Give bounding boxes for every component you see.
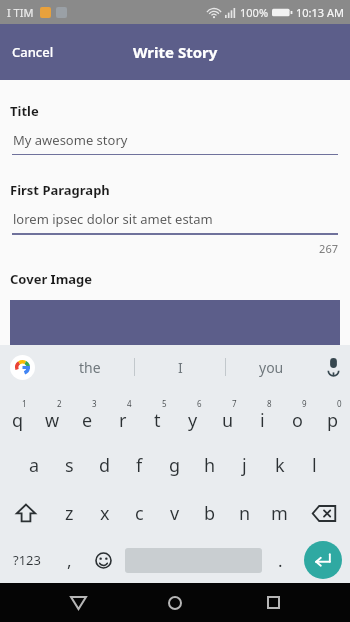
staticText: i [260,408,265,433]
staticText: 8 [267,398,272,409]
staticText: 100% [240,5,269,20]
staticText: First Paragraph [10,181,110,199]
button[interactable]: Shift [0,489,52,537]
staticText: e [82,408,93,433]
staticText: Cancel [12,43,54,61]
staticText: 5 [162,398,167,409]
button[interactable]: Voice input [316,345,350,389]
staticText: r [119,408,127,433]
button[interactable]: 9 [280,393,315,441]
staticText: w [45,408,60,433]
staticText: x [100,501,110,526]
staticText: q [12,408,24,433]
staticText: b [204,501,216,526]
staticText: ?123 [13,551,41,569]
staticText: 9 [302,398,307,409]
button[interactable]: z [52,489,87,537]
staticText: the [79,358,101,377]
staticText: a [29,453,40,478]
button[interactable]: m [262,489,297,537]
button[interactable]: I [135,345,225,389]
staticText: 0 [337,398,342,409]
button[interactable]: Home [155,583,195,622]
button[interactable]: the [45,345,134,389]
button[interactable]: My awesome story [0,131,350,155]
staticText: m [271,501,288,526]
staticText: c [135,501,144,526]
button[interactable]: Google [10,355,35,380]
staticText: Title [10,102,39,120]
staticText: My awesome story [13,131,128,149]
staticText: d [99,453,111,478]
staticText: 3 [92,398,97,409]
button[interactable]: h [192,441,227,489]
button[interactable]: Enter [296,537,350,583]
staticText: h [204,453,216,478]
button[interactable]: c [122,489,157,537]
button[interactable]: a [17,441,52,489]
staticText: I [178,358,183,377]
button[interactable]: 5 [140,393,175,441]
staticText: s [65,453,74,478]
button[interactable]: ?123 [0,537,54,583]
button[interactable]: Backspace [297,489,350,537]
staticText: n [239,501,251,526]
button[interactable]: v [157,489,192,537]
button[interactable]: s [52,441,87,489]
button[interactable]: n [227,489,262,537]
button[interactable]: , [54,537,85,583]
staticText: k [275,453,285,478]
button[interactable]: 8 [245,393,280,441]
button[interactable]: x [87,489,122,537]
button[interactable]: Recent apps [253,583,293,622]
staticText: z [65,501,74,526]
button[interactable]: 4 [105,393,140,441]
staticText: u [222,408,234,433]
button[interactable]: 1 [0,393,35,441]
button[interactable]: Emoji [85,537,122,583]
staticText: g [169,453,181,478]
staticText: Cover Image [10,270,93,288]
button[interactable]: lorem ipsec dolor sit amet estam [0,210,350,235]
staticText: 6 [197,398,202,409]
button[interactable]: 3 [70,393,105,441]
staticText: 10:13 AM [296,5,344,20]
button[interactable]: . [265,537,296,583]
staticText: f [136,453,143,478]
staticText: you [259,358,284,377]
button[interactable]: 6 [175,393,210,441]
staticText: . [278,549,283,572]
staticText: l [312,453,317,478]
staticText: 1 [22,398,27,409]
button[interactable]: g [157,441,192,489]
staticText: j [242,453,247,478]
button[interactable]: 0 [315,393,350,441]
staticText: Write Story [133,42,218,62]
staticText: y [188,408,198,433]
button[interactable]: j [227,441,262,489]
staticText: 7 [232,398,237,409]
staticText: 2 [57,398,62,409]
staticText: p [327,408,339,433]
staticText: t [154,408,161,433]
staticText: I TIM [7,5,34,20]
button[interactable]: d [87,441,122,489]
staticText: v [170,501,180,526]
button[interactable]: 7 [210,393,245,441]
button[interactable]: b [192,489,227,537]
button[interactable]: Cancel [0,24,66,80]
button[interactable]: you [226,345,316,389]
staticText: , [67,549,72,572]
button[interactable]: k [262,441,297,489]
staticText: o [292,408,303,433]
button[interactable]: l [297,441,332,489]
button[interactable]: f [122,441,157,489]
button[interactable]: Back [58,583,98,622]
staticText: 4 [127,398,132,409]
staticText: 267 [0,241,338,256]
button[interactable]: 2 [35,393,70,441]
staticText: lorem ipsec dolor sit amet estam [13,210,213,228]
